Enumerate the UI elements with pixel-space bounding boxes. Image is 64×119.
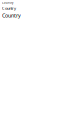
staticText: Country <box>2 12 21 19</box>
staticText: Country <box>2 1 13 4</box>
staticText: Country <box>2 5 16 11</box>
